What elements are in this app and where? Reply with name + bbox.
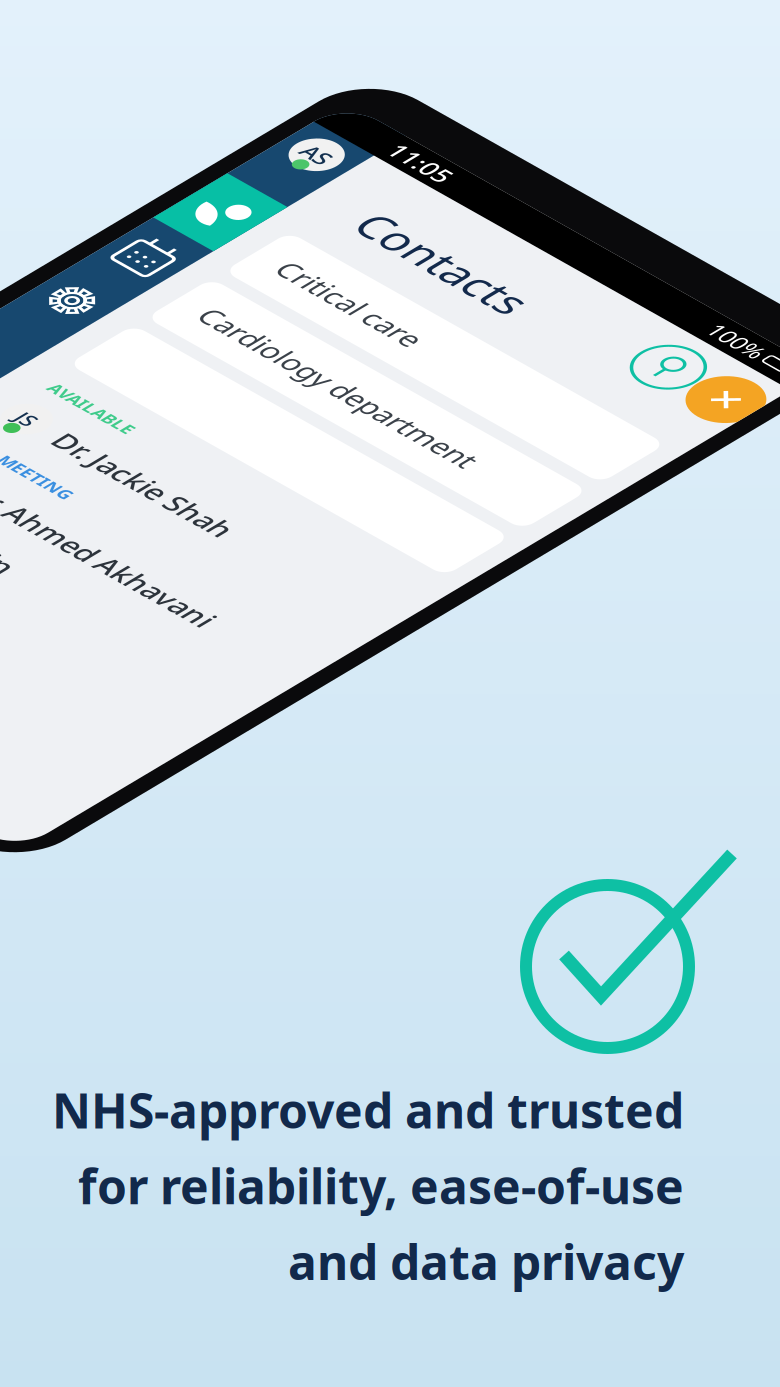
button[interactable]: Calendar [380, 258, 428, 318]
button[interactable]: Cardiology department [446, 278, 747, 331]
staticText: Dr. Ahmed Akhavani [492, 505, 683, 532]
button[interactable]: AA [438, 498, 761, 540]
staticText: Contacts [468, 156, 594, 197]
button[interactable]: JS [438, 428, 761, 470]
staticText: Dr. Jackie Shah [492, 435, 629, 462]
button[interactable]: Settings [380, 318, 428, 378]
staticText: Cardiology department [466, 291, 681, 317]
button[interactable]: Critical care [446, 215, 747, 268]
staticText: AS [394, 139, 413, 161]
staticText: JA [460, 551, 474, 570]
button[interactable]: JA [438, 540, 761, 582]
staticText: AVAILABLE [454, 408, 519, 424]
button[interactable]: Contacts [380, 198, 428, 258]
staticText: AA [457, 509, 477, 528]
staticText: JS [461, 439, 473, 458]
staticText: NHS-approved and trusted [52, 1078, 684, 1142]
staticText: Jo Atkin [492, 547, 565, 574]
button[interactable] [446, 341, 747, 394]
staticText: and data privacy [288, 1229, 684, 1293]
staticText: Critical care [466, 228, 575, 254]
staticText: 11:05 [430, 103, 475, 126]
staticText: for reliability, ease-of-use [78, 1154, 684, 1217]
